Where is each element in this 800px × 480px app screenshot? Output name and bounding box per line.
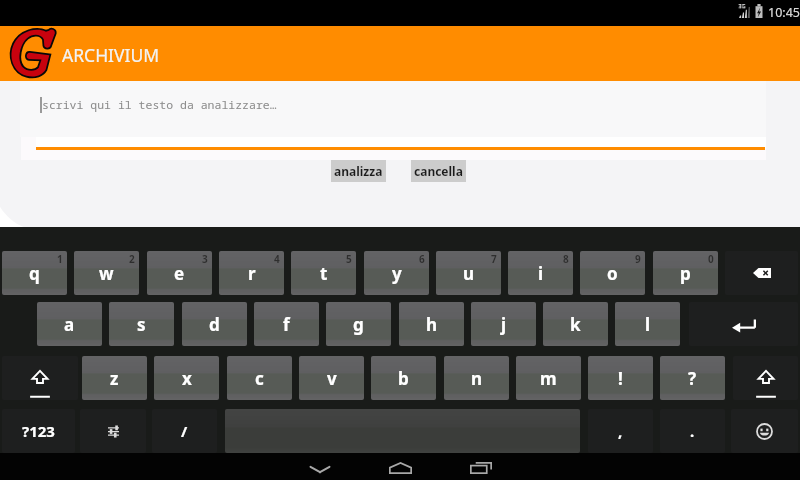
staticText: 8	[563, 252, 569, 266]
staticText: m	[540, 367, 557, 390]
staticText: ?123	[22, 421, 55, 441]
button[interactable]: d	[182, 302, 247, 346]
staticText: 7	[491, 252, 497, 266]
staticText: h	[426, 313, 438, 336]
button[interactable]: j	[471, 302, 536, 346]
staticText: z	[110, 367, 119, 390]
staticText: k	[570, 313, 581, 336]
button[interactable]: Hide keyboard	[280, 453, 360, 480]
staticText: x	[182, 367, 192, 390]
button[interactable]: /	[152, 409, 217, 453]
button[interactable]: u	[436, 251, 501, 295]
staticText: o	[607, 262, 618, 285]
staticText: i	[538, 262, 544, 285]
button[interactable]: e	[147, 251, 212, 295]
button[interactable]: Recent apps	[440, 453, 520, 480]
staticText: l	[645, 313, 651, 336]
button[interactable]: ?123	[2, 409, 75, 453]
button[interactable]: a	[37, 302, 102, 346]
staticText: 2	[129, 252, 135, 266]
button[interactable]: t	[291, 251, 356, 295]
button[interactable]: Emoji	[731, 409, 798, 453]
button[interactable]: b	[371, 356, 436, 400]
staticText: r	[248, 262, 256, 285]
button[interactable]: v	[299, 356, 364, 400]
button[interactable]: q	[2, 251, 67, 295]
button[interactable]: m	[516, 356, 581, 400]
button[interactable]: y	[364, 251, 429, 295]
staticText: analizza	[334, 163, 383, 179]
staticText: t	[320, 262, 328, 285]
button[interactable]: f	[254, 302, 319, 346]
staticText: y	[392, 262, 402, 285]
button[interactable]: Shift	[733, 356, 798, 400]
staticText: a	[64, 313, 75, 336]
button[interactable]: Enter	[689, 302, 798, 346]
staticText: cancella	[414, 163, 463, 179]
button[interactable]: ,	[588, 409, 653, 453]
button[interactable]: h	[399, 302, 464, 346]
staticText: 4	[274, 252, 280, 266]
staticText: v	[327, 367, 337, 390]
button[interactable]: s	[109, 302, 174, 346]
button[interactable]: Shift	[2, 356, 78, 400]
button[interactable]: g	[326, 302, 391, 346]
staticText: w	[99, 262, 114, 285]
staticText: j	[501, 313, 507, 336]
button[interactable]: i	[508, 251, 573, 295]
button[interactable]: Space	[225, 409, 580, 453]
button[interactable]: l	[615, 302, 680, 346]
staticText: 10:45	[768, 4, 800, 21]
staticText: n	[471, 367, 483, 390]
button[interactable]: ?	[660, 356, 725, 400]
staticText: 0	[708, 252, 714, 266]
staticText: p	[680, 262, 691, 285]
button[interactable]: p	[653, 251, 718, 295]
staticText: /	[181, 421, 188, 441]
staticText: 3	[202, 252, 208, 266]
staticText: s	[137, 313, 146, 336]
staticText: e	[174, 262, 185, 285]
staticText: b	[398, 367, 409, 390]
staticText: u	[463, 262, 475, 285]
button[interactable]: Home	[360, 453, 440, 480]
button[interactable]: w	[74, 251, 139, 295]
staticText: d	[209, 313, 220, 336]
button[interactable]: !	[588, 356, 653, 400]
staticText: 6	[419, 252, 425, 266]
staticText: ?	[688, 367, 697, 390]
button[interactable]: analizza	[331, 160, 386, 182]
staticText: 9	[635, 252, 641, 266]
staticText: 1	[57, 252, 63, 266]
button[interactable]: c	[227, 356, 292, 400]
staticText: ,	[618, 421, 623, 441]
button[interactable]: x	[154, 356, 219, 400]
staticText: ARCHIVIUM	[62, 43, 160, 67]
staticText: c	[255, 367, 264, 390]
staticText: 5	[346, 252, 352, 266]
button[interactable]: .	[660, 409, 725, 453]
staticText: .	[690, 421, 695, 441]
button[interactable]: z	[82, 356, 147, 400]
staticText: g	[353, 313, 364, 336]
button[interactable]	[20, 81, 766, 137]
button[interactable]: Backspace	[725, 251, 798, 295]
staticText: !	[618, 367, 623, 390]
staticText: q	[29, 262, 40, 285]
button[interactable]: o	[580, 251, 645, 295]
button[interactable]: n	[444, 356, 509, 400]
button[interactable]: Input method settings	[80, 409, 146, 453]
staticText: scrivi qui il testo da analizzare…	[42, 97, 277, 113]
button[interactable]: r	[219, 251, 284, 295]
staticText: f	[283, 313, 290, 336]
button[interactable]: cancella	[411, 160, 466, 182]
button[interactable]: k	[543, 302, 608, 346]
